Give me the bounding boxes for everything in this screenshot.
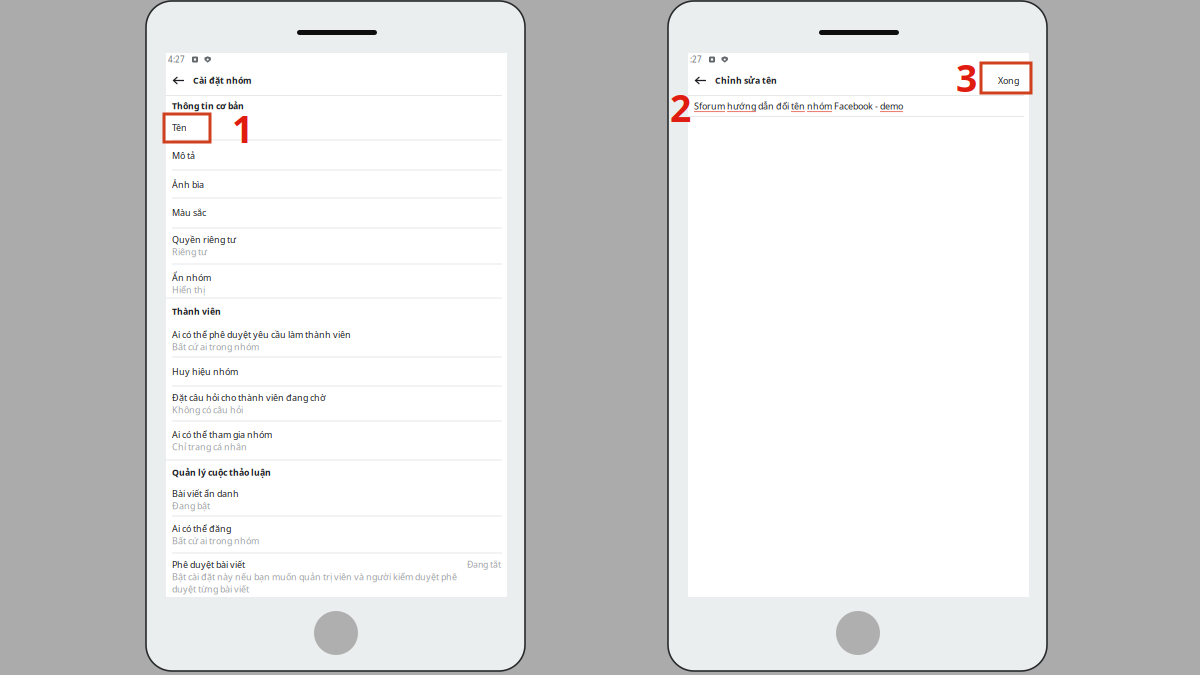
- staticText: Hiển thị: [172, 284, 205, 296]
- staticText: Không có câu hỏi: [172, 404, 243, 416]
- staticText: nhóm: [807, 100, 832, 112]
- staticText: Quyền riêng tư: [172, 233, 236, 246]
- staticText: Sforum: [694, 100, 725, 112]
- staticText: Đặt câu hỏi cho thành viên đang chờ: [172, 391, 326, 404]
- button[interactable]: Ai có thể phê duyệt yêu cầu làm thành vi…: [166, 323, 507, 356]
- button[interactable]: Ảnh bìa: [166, 169, 507, 197]
- button[interactable]: Tên: [166, 116, 507, 139]
- button[interactable]: Xong: [998, 66, 1029, 95]
- button[interactable]: Bài viết ẩn danh: [166, 482, 507, 515]
- staticText: đổi: [776, 100, 789, 112]
- staticText: Bài viết ẩn danh: [172, 487, 239, 500]
- staticText: Ai có thể đăng: [172, 522, 231, 535]
- staticText: Quản lý cuộc thảo luận: [172, 466, 271, 478]
- staticText: tên: [791, 100, 805, 112]
- staticText: Màu sắc: [172, 206, 206, 219]
- staticText: Phê duyệt bài viết: [172, 558, 245, 571]
- staticText: 1: [232, 103, 253, 154]
- staticText: Tên: [172, 121, 187, 134]
- button[interactable]: Mô tả: [166, 139, 507, 169]
- staticText: Cài đặt nhóm: [193, 75, 251, 86]
- staticText: demo: [880, 100, 903, 112]
- button[interactable]: Đặt câu hỏi cho thành viên đang chờ: [166, 385, 507, 420]
- staticText: Ẩn nhóm: [172, 271, 211, 284]
- staticText: 4:27: [168, 54, 185, 65]
- staticText: Bật cài đặt này nếu bạn muốn quản trị vi…: [172, 571, 457, 595]
- button[interactable]: Ẩn nhóm: [166, 263, 507, 297]
- staticText: Mô tả: [172, 149, 195, 162]
- button[interactable]: Back: [688, 66, 715, 95]
- staticText: Ai có thể phê duyệt yêu cầu làm thành vi…: [172, 328, 351, 341]
- button[interactable]: Phê duyệt bài viết: [166, 552, 507, 596]
- staticText: Ảnh bìa: [172, 178, 204, 191]
- button[interactable]: Quyền riêng tư: [166, 227, 507, 263]
- staticText: [756, 100, 758, 112]
- staticText: Huy hiệu nhóm: [172, 365, 238, 378]
- staticText: Bất cứ ai trong nhóm: [172, 535, 259, 547]
- staticText: hướng: [727, 100, 756, 112]
- staticText: Thông tin cơ bản: [172, 100, 244, 112]
- staticText: Facebook: [834, 100, 873, 112]
- staticText: Đang bật: [172, 500, 210, 512]
- staticText: :27: [690, 54, 702, 65]
- staticText: Chỉ trang cá nhân: [172, 441, 247, 453]
- staticText: 3: [956, 52, 977, 103]
- staticText: -: [873, 100, 880, 112]
- button[interactable]: Màu sắc: [166, 197, 507, 227]
- button[interactable]: Ai có thể đăng: [166, 515, 507, 552]
- staticText: dẫn: [758, 100, 774, 112]
- button[interactable]: Ai có thể tham gia nhóm: [166, 420, 507, 459]
- button[interactable]: Huy hiệu nhóm: [166, 356, 507, 385]
- staticText: Xong: [998, 74, 1019, 87]
- staticText: Thành viên: [172, 305, 221, 317]
- staticText: 2: [670, 82, 691, 133]
- button[interactable]: Back: [166, 66, 193, 95]
- staticText: Riêng tư: [172, 246, 207, 258]
- staticText: Chỉnh sửa tên: [715, 75, 777, 86]
- staticText: Ai có thể tham gia nhóm: [172, 428, 272, 441]
- staticText: Bất cứ ai trong nhóm: [172, 341, 259, 353]
- button[interactable]: Sforum: [688, 95, 1029, 117]
- staticText: Đang tắt: [467, 558, 501, 570]
